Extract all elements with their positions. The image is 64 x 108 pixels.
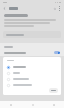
button[interactable] — [0, 41, 64, 46]
button[interactable]: Nav item 1 — [0, 101, 22, 108]
button[interactable] — [3, 70, 61, 76]
button[interactable] — [3, 76, 61, 82]
button[interactable] — [3, 31, 61, 38]
button[interactable]: Nav item 2 — [22, 101, 43, 108]
button[interactable] — [3, 82, 61, 88]
button[interactable] — [49, 88, 58, 93]
button[interactable]: Search — [52, 6, 57, 11]
button[interactable] — [4, 51, 60, 54]
button[interactable]: Back — [2, 6, 7, 11]
button[interactable]: Nav item 3 — [43, 101, 64, 108]
button[interactable] — [3, 64, 61, 70]
button[interactable]: More options — [57, 6, 62, 11]
